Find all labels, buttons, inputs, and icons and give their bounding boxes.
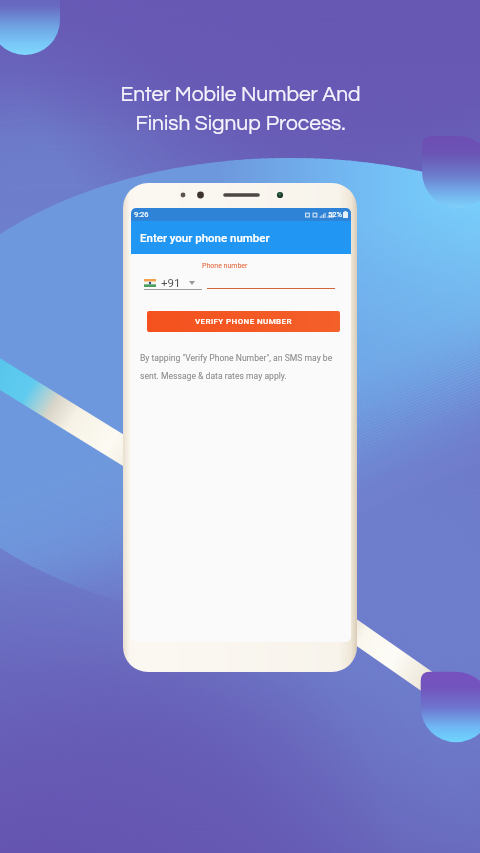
button[interactable]: VERIFY PHONE NUMBER: [147, 311, 340, 332]
staticText: Enter Mobile Number And Finish Signup Pr…: [120, 84, 361, 134]
staticText: 9:26: [134, 210, 149, 219]
staticText: By tapping "Verify Phone Number", an SMS…: [140, 353, 333, 381]
staticText: Enter your phone number: [140, 231, 270, 244]
staticText: Phone number: [202, 262, 248, 270]
staticText: +91: [161, 276, 181, 289]
staticText: VERIFY PHONE NUMBER: [195, 317, 292, 326]
button[interactable]: +91: [144, 276, 195, 289]
staticText: 52%: [328, 210, 342, 219]
